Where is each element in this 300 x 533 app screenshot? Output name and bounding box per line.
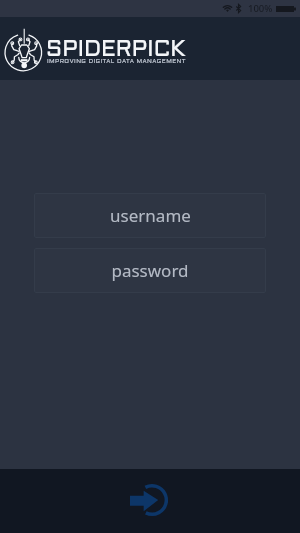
staticText: SPIDERPICK [46,40,186,61]
staticText: 100% [248,2,273,15]
button[interactable]: username [34,193,266,238]
button[interactable]: password [34,248,266,293]
staticText: username [110,204,191,227]
button[interactable]: Log in [124,475,174,525]
staticText: password [111,259,189,282]
staticText: IMPROVING DIGITAL DATA MANAGEMENT [47,59,186,65]
